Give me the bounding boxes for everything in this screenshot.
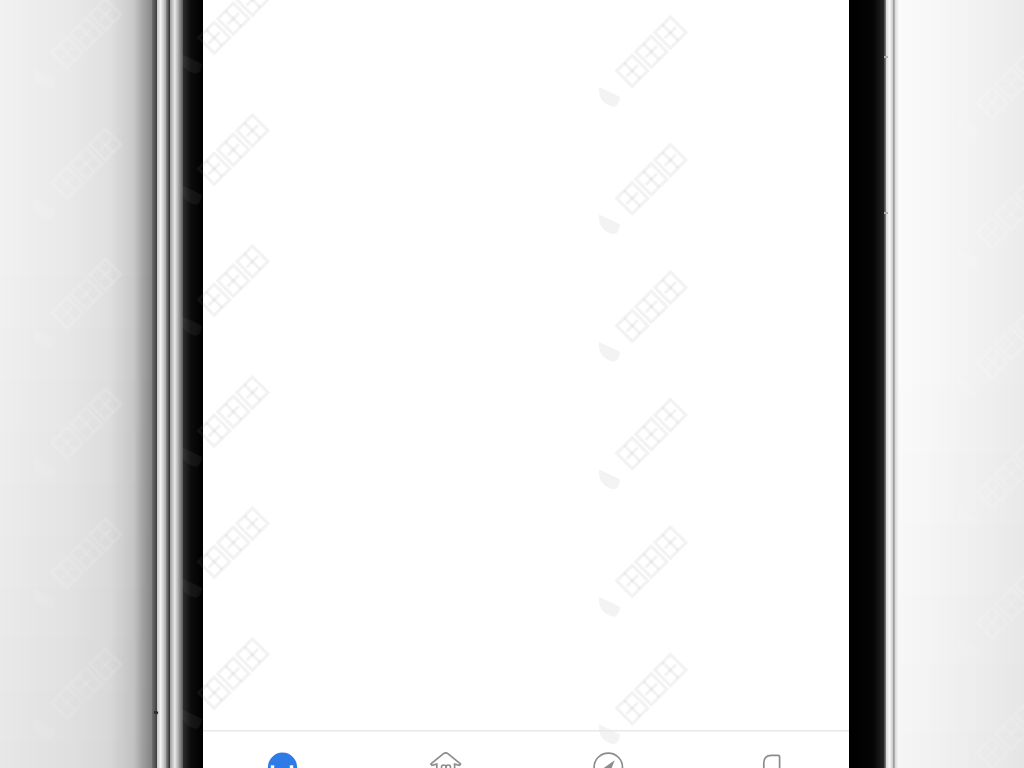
button[interactable] [365,731,527,768]
button[interactable] [203,731,365,768]
button[interactable] [527,731,689,768]
button[interactable] [689,731,849,768]
